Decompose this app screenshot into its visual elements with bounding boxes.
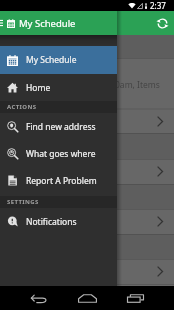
button[interactable]: Back xyxy=(19,286,58,310)
staticText: Find new address xyxy=(26,121,96,133)
button[interactable]: My Schedule xyxy=(0,46,117,74)
button[interactable]: Open item xyxy=(0,259,174,284)
staticText: SETTINGS xyxy=(7,198,39,206)
button[interactable]: Find new address xyxy=(0,113,117,140)
staticText: 2:37 xyxy=(150,0,166,11)
button[interactable]: What goes where xyxy=(0,140,117,167)
staticText: 9:00am, Items xyxy=(103,79,160,91)
button[interactable]: Open item xyxy=(0,159,174,184)
staticText: Notifications xyxy=(26,216,77,228)
button[interactable]: Home xyxy=(0,74,117,101)
button[interactable]: Report A Problem xyxy=(0,167,117,194)
button[interactable]: Recent apps xyxy=(116,286,155,310)
button[interactable]: Notifications xyxy=(0,208,117,235)
staticText: My Schedule xyxy=(19,17,76,30)
button[interactable]: Refresh xyxy=(150,11,174,35)
button[interactable]: Open item xyxy=(0,109,174,134)
staticText: Home xyxy=(26,82,51,94)
staticText: What goes where xyxy=(26,148,96,160)
button[interactable]: Open item xyxy=(0,209,174,234)
staticText: My Schedule xyxy=(26,54,77,66)
button[interactable]: Home xyxy=(68,286,107,310)
staticText: Report A Problem xyxy=(26,175,97,187)
button[interactable]: Open navigation drawer xyxy=(0,11,7,35)
staticText: ACTIONS xyxy=(7,103,37,111)
